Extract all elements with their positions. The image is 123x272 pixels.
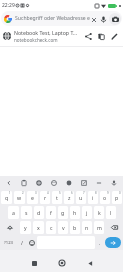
button[interactable]: ?123 bbox=[1, 236, 16, 249]
staticText: . bbox=[99, 239, 101, 246]
staticText: notebookcheck.com bbox=[14, 37, 58, 43]
button[interactable]: t bbox=[52, 191, 62, 204]
staticText: x bbox=[37, 224, 40, 231]
button[interactable]: k bbox=[94, 206, 104, 219]
staticText: 22:29 bbox=[2, 2, 15, 9]
staticText: 7 bbox=[83, 191, 85, 195]
staticText: 0 bbox=[119, 191, 121, 195]
staticText: f bbox=[50, 209, 52, 216]
button[interactable]: Voice search bbox=[98, 14, 109, 25]
staticText: q bbox=[5, 194, 9, 201]
button[interactable]: y bbox=[20, 221, 31, 234]
button[interactable]: u bbox=[76, 191, 86, 204]
staticText: 6 bbox=[71, 191, 73, 195]
staticText: g bbox=[61, 209, 65, 216]
staticText: i bbox=[92, 194, 94, 201]
button[interactable]: Shift bbox=[1, 221, 18, 234]
staticText: w bbox=[17, 194, 22, 201]
button[interactable]: r bbox=[40, 191, 50, 204]
staticText: v bbox=[62, 224, 65, 231]
button[interactable]: e bbox=[27, 191, 38, 204]
staticText: p bbox=[115, 194, 119, 201]
button[interactable]: Backspace bbox=[106, 221, 122, 234]
button[interactable]: Settings bbox=[31, 176, 46, 190]
staticText: ?123 bbox=[4, 240, 14, 246]
staticText: r bbox=[44, 194, 47, 201]
staticText: t bbox=[56, 194, 58, 201]
button[interactable]: l bbox=[106, 206, 116, 219]
button[interactable]: o bbox=[100, 191, 110, 204]
staticText: o bbox=[103, 194, 107, 201]
staticText: 4 bbox=[47, 191, 49, 195]
button[interactable]: v bbox=[58, 221, 68, 234]
button[interactable]: Emoji bbox=[28, 236, 35, 249]
button[interactable]: Translate bbox=[76, 176, 91, 190]
staticText: 1 bbox=[9, 191, 11, 195]
button[interactable]: Copy bbox=[95, 30, 108, 43]
button[interactable]: q bbox=[1, 191, 12, 204]
staticText: u bbox=[79, 194, 83, 201]
button[interactable]: Suchbegriff oder Webadresse e bbox=[1, 11, 122, 26]
button[interactable]: w bbox=[14, 191, 25, 204]
button[interactable]: More options bbox=[91, 176, 106, 190]
staticText: a bbox=[12, 209, 15, 216]
button[interactable]: Back bbox=[1, 176, 16, 190]
button[interactable]: x bbox=[33, 221, 44, 234]
button[interactable]: Clear bbox=[89, 15, 98, 24]
button[interactable]: / bbox=[18, 236, 26, 249]
button[interactable]: Go bbox=[105, 237, 121, 248]
staticText: n bbox=[85, 224, 89, 231]
staticText: Notebook Test, Laptop T... bbox=[14, 29, 78, 36]
button[interactable]: Stickers bbox=[46, 176, 61, 190]
staticText: 2 bbox=[22, 191, 24, 195]
staticText: h bbox=[73, 209, 77, 216]
button[interactable]: i bbox=[88, 191, 98, 204]
staticText: 3 bbox=[35, 191, 37, 195]
button[interactable]: b bbox=[70, 221, 80, 234]
button[interactable]: n bbox=[82, 221, 92, 234]
button[interactable]: p bbox=[112, 191, 122, 204]
button[interactable]: Google Lens bbox=[109, 13, 121, 25]
staticText: m bbox=[97, 224, 102, 231]
button[interactable]: Edit bbox=[108, 30, 121, 43]
button[interactable]: d bbox=[34, 206, 44, 219]
button[interactable]: Back bbox=[83, 256, 97, 270]
button[interactable]: Recents bbox=[27, 256, 41, 270]
staticText: / bbox=[21, 239, 23, 246]
staticText: k bbox=[98, 209, 101, 216]
staticText: 8 bbox=[95, 191, 97, 195]
staticText: y bbox=[24, 224, 27, 231]
staticText: z bbox=[68, 194, 71, 201]
button[interactable]: Share bbox=[82, 30, 95, 43]
staticText: 5 bbox=[59, 191, 61, 195]
button[interactable]: m bbox=[94, 221, 104, 234]
staticText: 9 bbox=[107, 191, 109, 195]
button[interactable]: a bbox=[8, 206, 19, 219]
button[interactable]: Clipboard bbox=[16, 176, 31, 190]
button[interactable]: f bbox=[46, 206, 56, 219]
button[interactable]: h bbox=[70, 206, 80, 219]
button[interactable]: Emoji kitchen bbox=[61, 176, 76, 190]
button[interactable]: Voice input bbox=[106, 176, 121, 190]
staticText: Suchbegriff oder Webadresse e bbox=[15, 15, 90, 22]
button[interactable]: g bbox=[58, 206, 68, 219]
button[interactable]: j bbox=[82, 206, 92, 219]
button[interactable]: . bbox=[97, 236, 103, 249]
button[interactable]: s bbox=[21, 206, 32, 219]
staticText: b bbox=[73, 224, 77, 231]
button[interactable]: Notebook Test, Laptop T... bbox=[0, 26, 123, 46]
staticText: j bbox=[86, 209, 88, 216]
button[interactable]: z bbox=[64, 191, 74, 204]
staticText: s bbox=[25, 209, 28, 216]
staticText: e bbox=[31, 194, 34, 201]
button[interactable]: Home bbox=[55, 256, 69, 270]
staticText: l bbox=[110, 209, 112, 216]
staticText: c bbox=[50, 224, 53, 231]
staticText: d bbox=[37, 209, 41, 216]
button[interactable]: c bbox=[46, 221, 56, 234]
